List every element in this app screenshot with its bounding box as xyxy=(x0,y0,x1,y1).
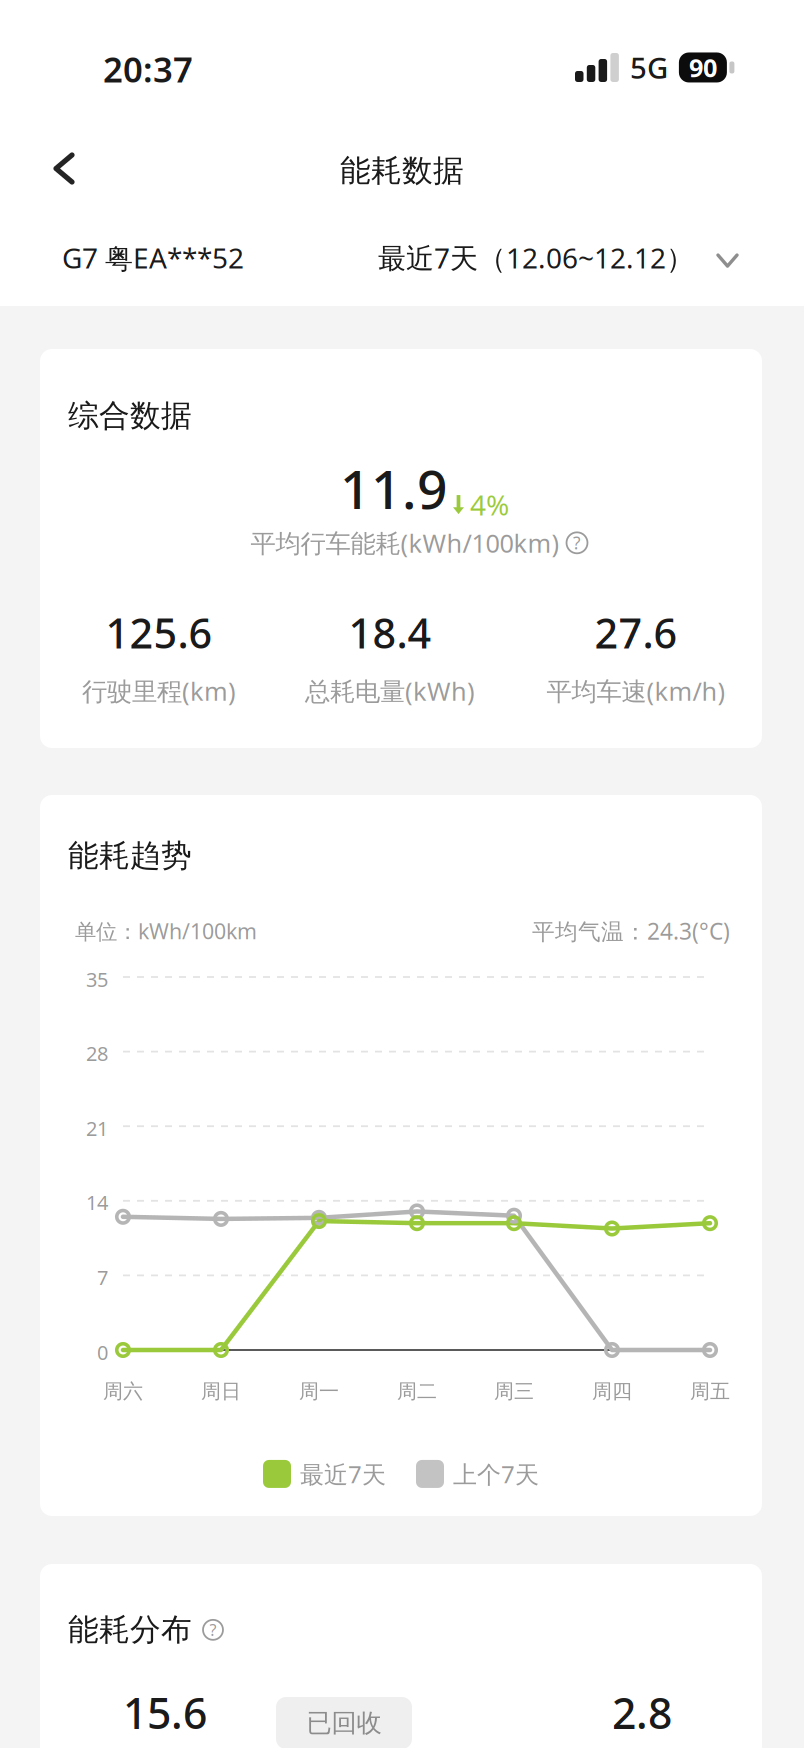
staticText: 综合数据 xyxy=(68,397,192,435)
staticText: 35 xyxy=(86,966,108,993)
staticText: 平均气温：24.3(°C) xyxy=(532,916,730,946)
staticText: 0 xyxy=(97,1339,108,1366)
staticText: 14 xyxy=(86,1189,108,1216)
staticText: 21 xyxy=(86,1115,108,1142)
staticText: 11.9 xyxy=(340,453,448,524)
staticText: G7 粤EA***52 xyxy=(62,239,244,276)
staticText: 周一 xyxy=(299,1379,339,1404)
button[interactable]: 最近7天（12.06~12.12） xyxy=(378,239,737,276)
staticText: 周三 xyxy=(494,1379,534,1404)
staticText: 15.6 xyxy=(123,1684,207,1741)
staticText: 27.6 xyxy=(594,605,677,660)
staticText: 能耗数据 xyxy=(340,152,464,190)
staticText: 行驶里程(km) xyxy=(82,674,236,708)
staticText: 5G xyxy=(630,48,668,87)
staticText: 18.4 xyxy=(348,605,431,660)
staticText: 周日 xyxy=(201,1379,241,1404)
staticText: 周二 xyxy=(397,1379,437,1404)
button[interactable]: Back xyxy=(34,133,94,204)
staticText: 最近7天 xyxy=(300,1458,386,1490)
staticText: 已回收 xyxy=(306,1707,381,1738)
staticText: 上个7天 xyxy=(453,1458,539,1490)
staticText: 最近7天（12.06~12.12） xyxy=(378,239,694,276)
staticText: 平均车速(km/h) xyxy=(546,674,725,708)
staticText: 2.8 xyxy=(612,1684,672,1741)
staticText: 总耗电量(kWh) xyxy=(305,674,475,708)
staticText: ? xyxy=(573,531,581,554)
staticText: 能耗分布 xyxy=(68,1611,192,1649)
staticText: 能耗趋势 xyxy=(68,837,192,875)
staticText: 周六 xyxy=(103,1379,143,1404)
staticText: 20:37 xyxy=(103,46,193,92)
staticText: 单位：kWh/100km xyxy=(75,917,257,945)
staticText: 4% xyxy=(470,486,509,523)
staticText: 周四 xyxy=(592,1379,632,1404)
staticText: ? xyxy=(209,1619,216,1640)
staticText: 周五 xyxy=(690,1379,730,1404)
staticText: 90 xyxy=(689,51,717,84)
staticText: 平均行车能耗(kWh/100km) xyxy=(250,526,559,560)
staticText: 125.6 xyxy=(105,605,212,660)
staticText: 7 xyxy=(97,1264,108,1291)
staticText: 28 xyxy=(86,1040,108,1067)
